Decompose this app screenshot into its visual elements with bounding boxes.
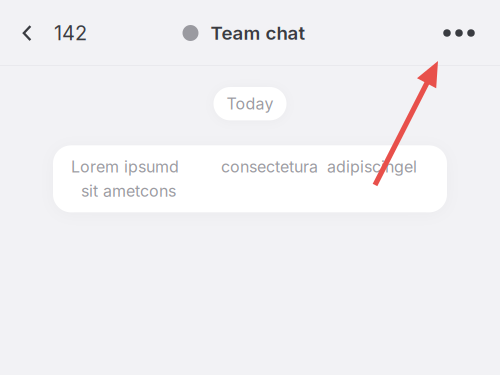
staticText: Team chat	[210, 22, 305, 44]
button[interactable]: Lorem ipsumd	[53, 145, 447, 212]
staticText: Today	[226, 94, 273, 113]
staticText: 142	[54, 21, 87, 45]
staticText: sit ametcons	[71, 181, 176, 201]
staticText: adipiscingel	[327, 157, 417, 176]
staticText: Lorem ipsumd	[71, 157, 179, 176]
button[interactable]: Back	[0, 11, 101, 55]
button[interactable]: More options	[428, 15, 500, 51]
staticText: consectetura	[221, 157, 318, 176]
